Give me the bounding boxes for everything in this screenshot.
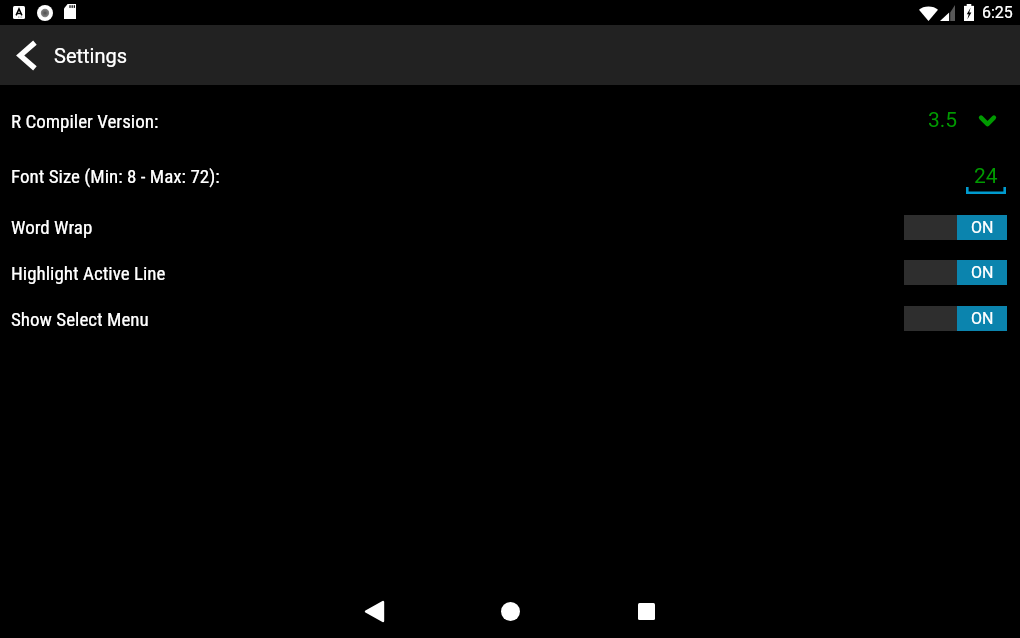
staticText: Highlight Active Line: [11, 262, 166, 284]
staticText: 24: [974, 164, 998, 189]
staticText: R Compiler Version:: [11, 110, 159, 132]
button[interactable]: Show Select Menu: [0, 295, 1020, 342]
button[interactable]: R Compiler Version:: [0, 93, 1020, 148]
button[interactable]: Highlight Active Line: [0, 250, 1020, 295]
button[interactable]: Font Size (Min: 8 - Max: 72):: [0, 148, 1020, 204]
staticText: Show Select Menu: [11, 308, 149, 330]
staticText: Settings: [54, 44, 128, 67]
staticText: Word Wrap: [11, 216, 93, 238]
button[interactable]: Word Wrap: [0, 204, 1020, 250]
staticText: ON: [971, 263, 994, 282]
button[interactable]: Navigate up: [0, 25, 54, 85]
button[interactable]: Home: [462, 588, 558, 634]
button[interactable]: 3.5: [928, 108, 996, 133]
button[interactable]: Recent apps: [598, 588, 694, 634]
staticText: Font Size (Min: 8 - Max: 72):: [11, 165, 220, 187]
button[interactable]: ON: [904, 306, 1007, 331]
button[interactable]: Back: [326, 588, 422, 634]
button[interactable]: 24: [966, 148, 1006, 204]
staticText: 6:25: [982, 3, 1013, 22]
staticText: ON: [971, 218, 994, 237]
button[interactable]: ON: [904, 260, 1007, 285]
staticText: ON: [971, 309, 994, 328]
staticText: 3.5: [928, 108, 958, 133]
button[interactable]: ON: [904, 215, 1007, 240]
